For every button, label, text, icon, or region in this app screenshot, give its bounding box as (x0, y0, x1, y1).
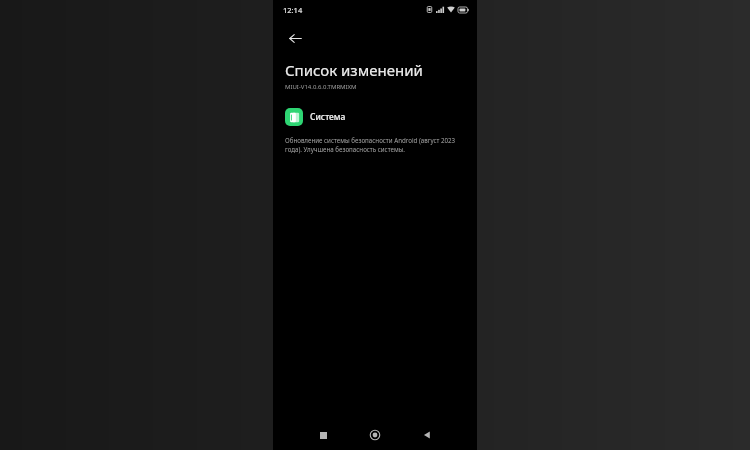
button[interactable]: Back (412, 420, 442, 450)
staticText: MIUI-V14.0.6.0.TMRMIXM (285, 83, 357, 91)
staticText: Система (310, 111, 346, 123)
button[interactable]: Home (360, 420, 390, 450)
staticText: Обновление системы безопасности Android … (285, 136, 465, 154)
button[interactable]: Back (282, 25, 308, 51)
staticText: Список изменений (285, 60, 423, 80)
staticText: 12:14 (283, 5, 303, 15)
button[interactable]: Recents (308, 420, 338, 450)
button[interactable]: Система (273, 106, 477, 128)
